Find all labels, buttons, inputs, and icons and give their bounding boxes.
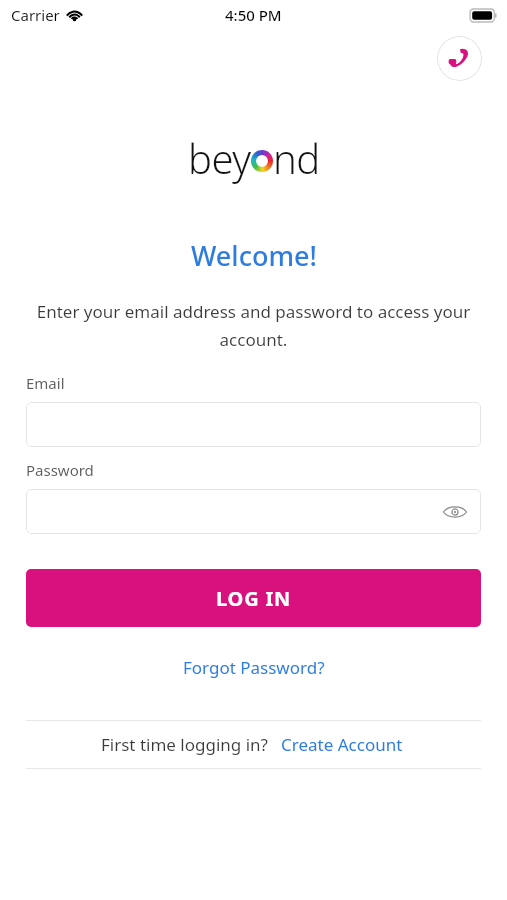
staticText: First time logging in?: [101, 733, 268, 756]
staticText: nd: [273, 131, 320, 185]
staticText: Password: [26, 460, 94, 480]
button[interactable]: Show password: [441, 498, 469, 526]
button[interactable]: Forgot Password?: [175, 652, 333, 683]
staticText: Carrier: [11, 5, 60, 25]
staticText: bey: [188, 131, 251, 185]
staticText: Create Account: [281, 733, 403, 756]
button[interactable]: [26, 402, 481, 447]
staticText: Email: [26, 373, 65, 393]
staticText: Welcome!: [191, 237, 317, 274]
staticText: Forgot Password?: [183, 656, 325, 679]
button[interactable]: Show password: [26, 489, 481, 534]
staticText: 4:50 PM: [225, 5, 282, 25]
button[interactable]: Create Account: [278, 730, 406, 759]
button[interactable]: Call support: [437, 36, 482, 81]
button[interactable]: LOG IN: [26, 569, 481, 627]
staticText: LOG IN: [216, 585, 292, 612]
staticText: Enter your email address and password to…: [24, 300, 483, 351]
